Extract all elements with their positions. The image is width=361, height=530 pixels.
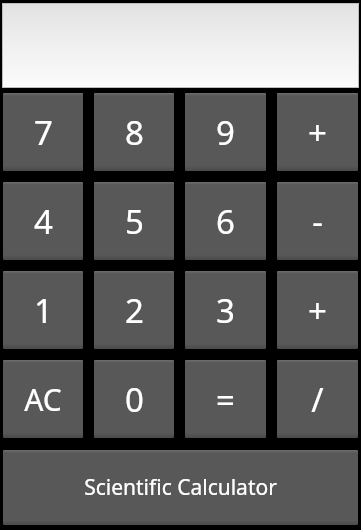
staticText: AC: [24, 379, 62, 420]
staticText: 3: [216, 288, 235, 333]
staticText: 4: [34, 199, 53, 244]
button[interactable]: 1: [3, 271, 83, 349]
button[interactable]: 8: [94, 93, 174, 171]
staticText: 2: [125, 288, 144, 333]
button[interactable]: /: [277, 360, 358, 438]
button[interactable]: -: [277, 182, 358, 260]
button[interactable]: 3: [185, 271, 266, 349]
button[interactable]: 0: [94, 360, 174, 438]
button[interactable]: Scientific Calculator: [3, 450, 358, 525]
button[interactable]: 5: [94, 182, 174, 260]
button[interactable]: 6: [185, 182, 266, 260]
staticText: 7: [34, 110, 53, 155]
staticText: 1: [34, 288, 53, 333]
staticText: 8: [125, 110, 144, 155]
staticText: Scientific Calculator: [84, 473, 277, 502]
button[interactable]: 7: [3, 93, 83, 171]
button[interactable]: +: [277, 271, 358, 349]
button[interactable]: +: [277, 93, 358, 171]
staticText: -: [312, 199, 323, 244]
button[interactable]: [2, 3, 359, 88]
button[interactable]: 9: [185, 93, 266, 171]
staticText: 5: [125, 199, 144, 244]
staticText: 0: [125, 377, 144, 422]
staticText: +: [308, 110, 327, 155]
staticText: +: [308, 288, 327, 333]
staticText: 9: [216, 110, 235, 155]
button[interactable]: AC: [3, 360, 83, 438]
staticText: 6: [216, 199, 235, 244]
staticText: =: [216, 377, 235, 422]
staticText: /: [311, 377, 324, 422]
button[interactable]: =: [185, 360, 266, 438]
button[interactable]: 2: [94, 271, 174, 349]
button[interactable]: 4: [3, 182, 83, 260]
